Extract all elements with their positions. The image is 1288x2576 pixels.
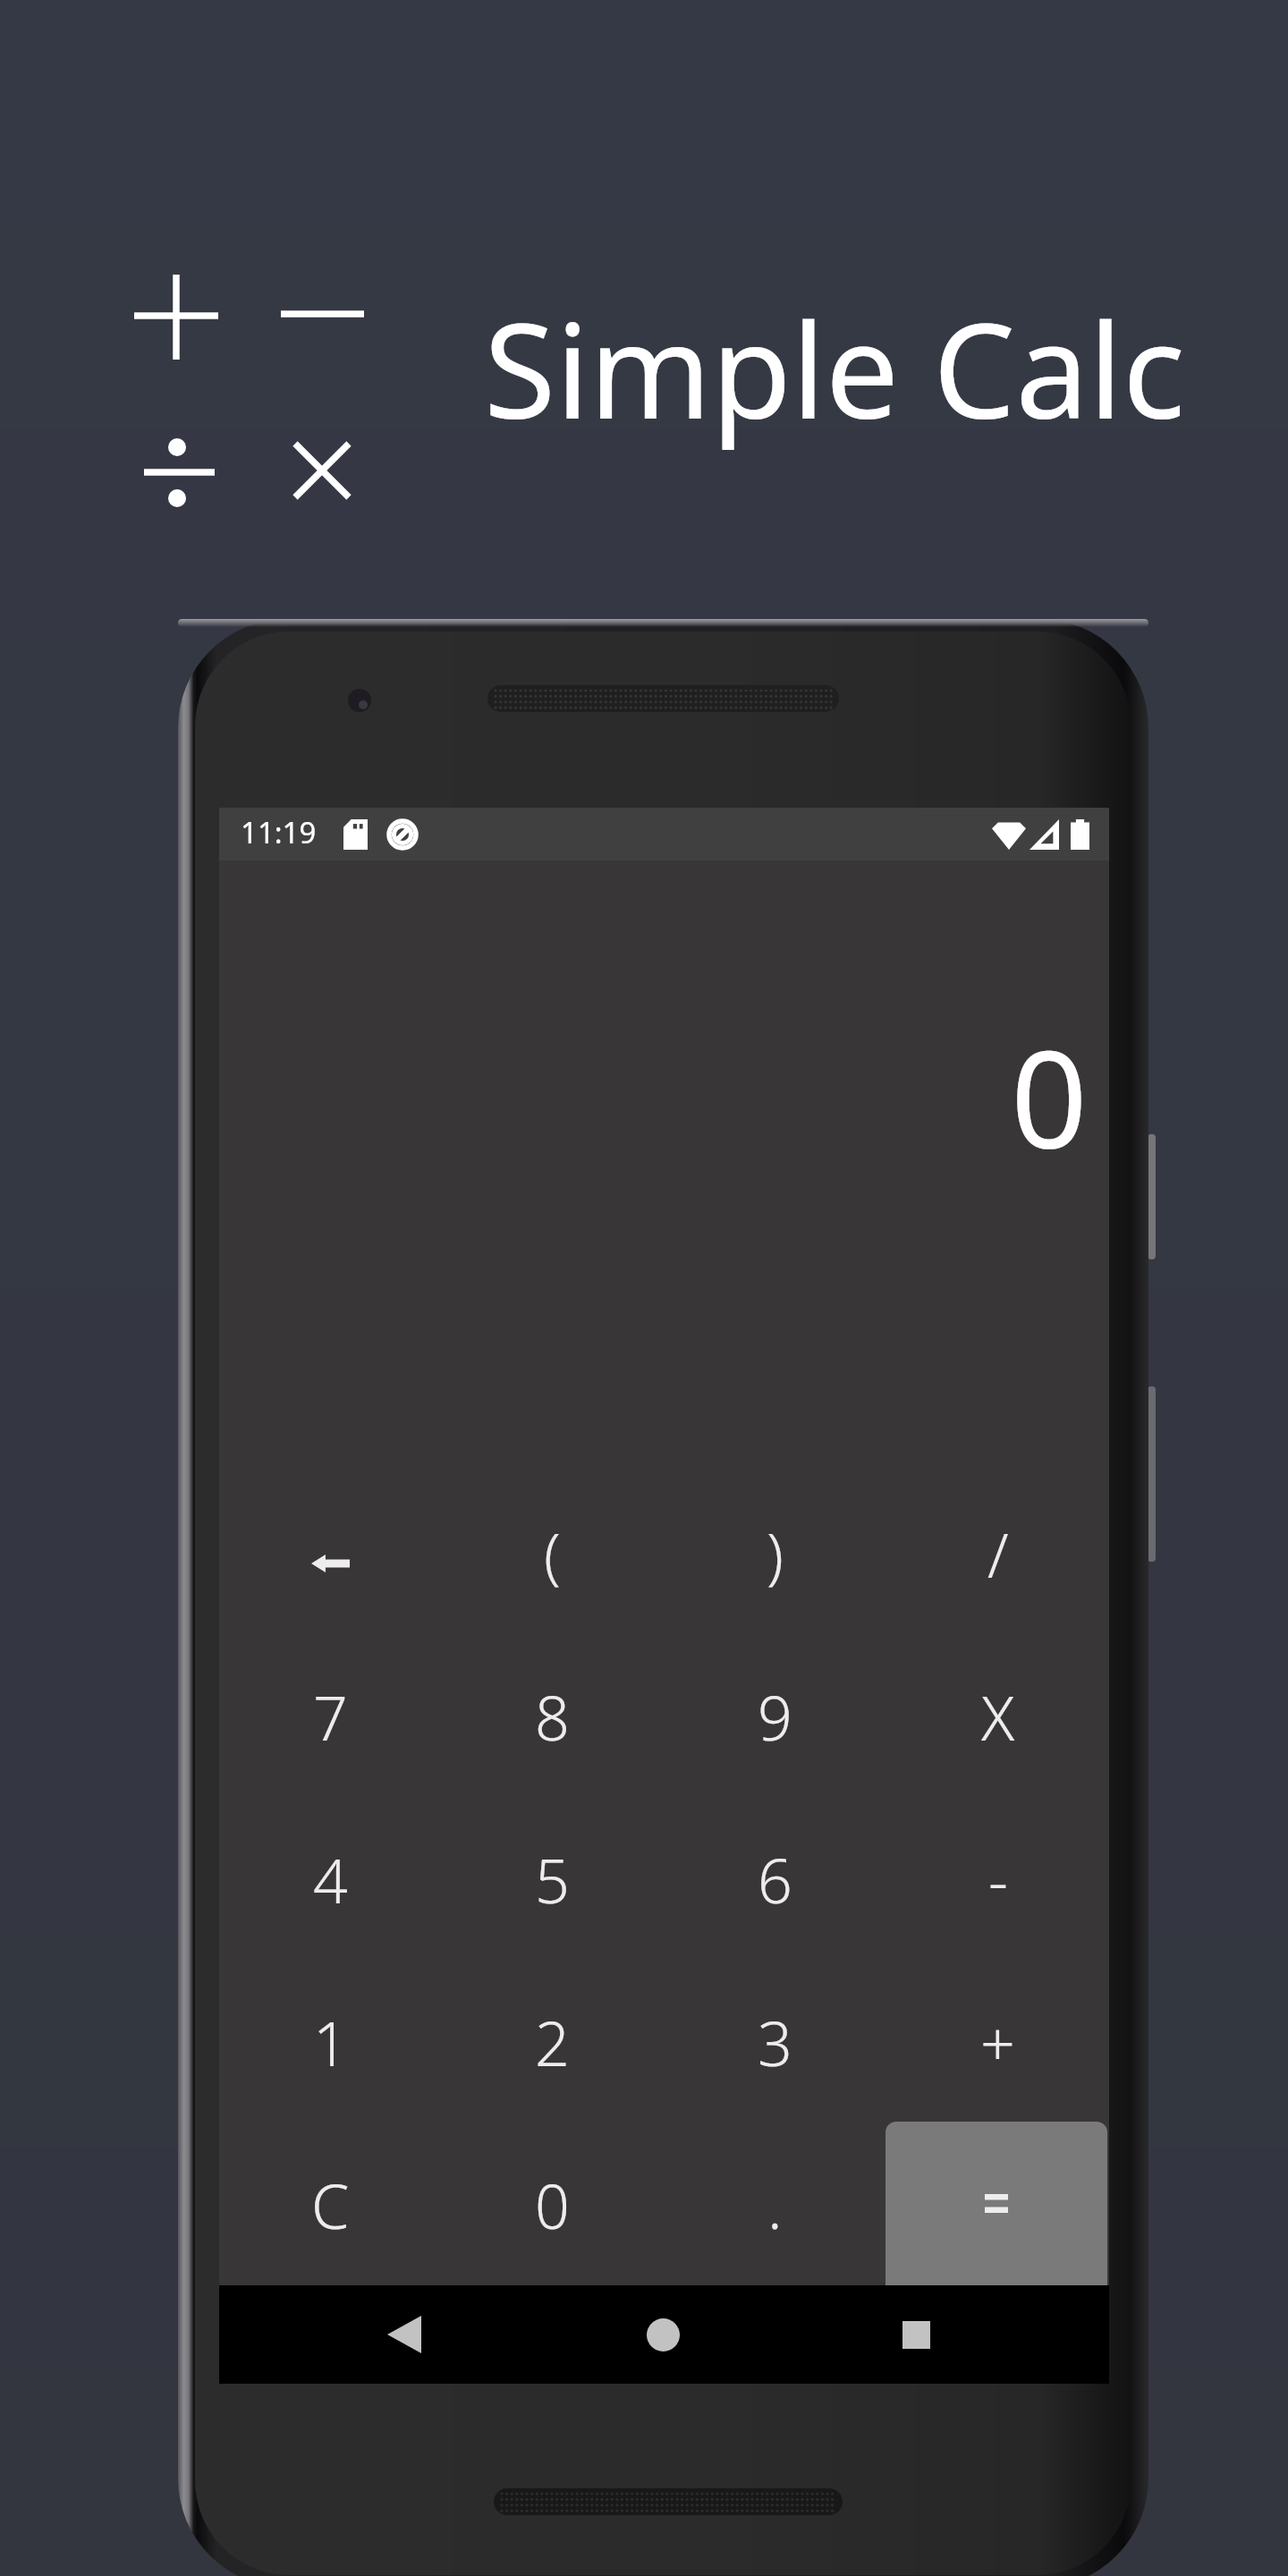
- staticText: 0: [535, 2164, 570, 2247]
- staticText: .: [767, 2164, 783, 2247]
- staticText: 1: [313, 2001, 348, 2084]
- button[interactable]: 7: [219, 1635, 441, 1798]
- staticText: =: [980, 2164, 1015, 2247]
- button[interactable]: 3: [664, 1961, 886, 2123]
- staticText: C: [311, 2164, 350, 2247]
- button[interactable]: 8: [441, 1635, 664, 1798]
- staticText: 2: [535, 2001, 570, 2084]
- button[interactable]: C: [219, 2123, 441, 2286]
- staticText: Simple Calc: [484, 279, 1186, 457]
- button[interactable]: 4: [219, 1798, 441, 1961]
- button[interactable]: 5: [441, 1798, 664, 1961]
- button[interactable]: X: [886, 1635, 1109, 1798]
- button[interactable]: 9: [664, 1635, 886, 1798]
- staticText: 9: [758, 1675, 792, 1758]
- staticText: 4: [313, 1838, 348, 1921]
- staticText: 5: [535, 1838, 570, 1921]
- button[interactable]: +: [886, 1961, 1109, 2123]
- staticText: -: [988, 1838, 1008, 1921]
- button[interactable]: .: [664, 2123, 886, 2286]
- staticText: 11:19: [241, 812, 317, 852]
- staticText: 3: [758, 2001, 792, 2084]
- staticText: +: [980, 2001, 1015, 2084]
- button[interactable]: 1: [219, 1961, 441, 2123]
- button[interactable]: 0: [441, 2123, 664, 2286]
- staticText: X: [981, 1675, 1015, 1758]
- button[interactable]: -: [886, 1798, 1109, 1961]
- button[interactable]: Equals: [885, 2122, 1107, 2285]
- button[interactable]: Recents: [853, 2285, 979, 2384]
- staticText: 0: [1011, 1005, 1088, 1188]
- staticText: 7: [313, 1675, 348, 1758]
- staticText: (: [544, 1513, 561, 1596]
- button[interactable]: 6: [664, 1798, 886, 1961]
- button[interactable]: 2: [441, 1961, 664, 2123]
- button[interactable]: (: [441, 1472, 664, 1635]
- staticText: ): [767, 1513, 784, 1596]
- button[interactable]: Back: [342, 2285, 467, 2384]
- staticText: /: [987, 1513, 1009, 1596]
- button[interactable]: /: [886, 1472, 1109, 1635]
- button[interactable]: Backspace: [219, 1472, 441, 1635]
- staticText: 8: [535, 1675, 570, 1758]
- button[interactable]: ): [664, 1472, 886, 1635]
- staticText: 6: [758, 1838, 792, 1921]
- button[interactable]: =: [886, 2123, 1109, 2286]
- button[interactable]: Home: [600, 2285, 725, 2384]
